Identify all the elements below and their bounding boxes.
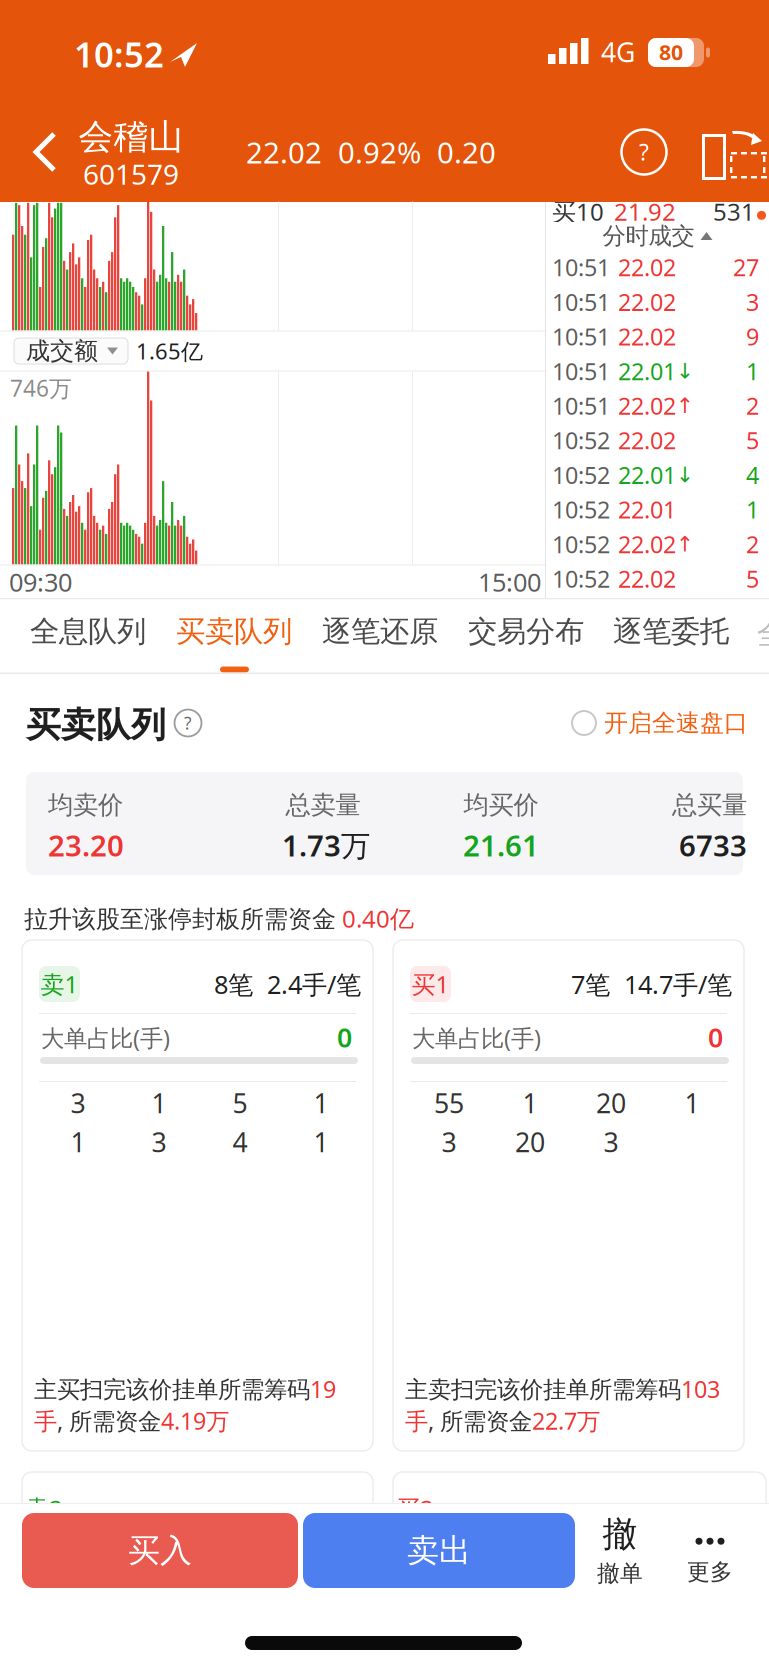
staticText: 3 <box>441 1124 456 1160</box>
staticText: 买1 <box>411 968 449 1000</box>
button[interactable]: 卖出 <box>303 1513 575 1588</box>
staticText: 5 <box>746 563 759 595</box>
staticText: 10:52 <box>552 424 610 456</box>
staticText: 10:52 <box>552 563 610 595</box>
staticText: ? <box>639 137 649 167</box>
staticText: 撤 <box>602 1512 637 1556</box>
staticText: ↓ <box>676 462 694 487</box>
staticText: 09:30 <box>9 565 72 599</box>
button[interactable]: 全息队列 <box>28 603 148 659</box>
staticText: 1 <box>151 1085 166 1121</box>
staticText: 1.65亿 <box>136 336 203 366</box>
staticText: 15:00 <box>478 565 541 599</box>
button[interactable]: 说明 <box>172 707 204 739</box>
staticText: 1 <box>522 1085 537 1121</box>
staticText: 大单占比(手) <box>412 1022 541 1054</box>
button[interactable]: 撤 <box>587 1511 653 1589</box>
staticText: 主卖扫完该价挂单所需筹码103手, 所需资金22.7万 <box>405 1373 720 1437</box>
staticText: 3 <box>603 1124 618 1160</box>
staticText: 22.01 <box>618 494 676 525</box>
staticText: 10:51 <box>552 355 610 387</box>
staticText: 拉升该股至涨停封板所需资金 0.40亿 <box>24 902 414 935</box>
staticText: 22.01 <box>618 459 676 491</box>
staticText: 7笔 14.7手/笔 <box>571 967 732 1001</box>
staticText: 20 <box>596 1085 626 1121</box>
staticText: 2 <box>746 390 759 422</box>
staticText: 6733 <box>679 825 747 865</box>
staticText: 1 <box>746 355 759 387</box>
staticText: 买10 <box>552 195 604 228</box>
staticText: 全息队列 <box>30 613 146 650</box>
staticText: ↑ <box>676 393 694 418</box>
staticText: 买卖队列 <box>176 613 292 650</box>
staticText: 27 <box>733 251 759 283</box>
staticText: 买入 <box>128 1530 192 1571</box>
staticText: 22.01 <box>618 355 676 387</box>
staticText: 10:51 <box>552 321 610 352</box>
staticText: 1 <box>746 494 759 525</box>
staticText: 分时成交 <box>602 221 694 251</box>
staticText: 22.02 <box>618 321 676 352</box>
button[interactable]: 逐笔还原 <box>320 603 440 659</box>
staticText: 22.02 <box>618 563 676 595</box>
button[interactable]: Help <box>618 122 670 182</box>
button[interactable]: 买入 <box>22 1513 298 1588</box>
staticText: 总买量 <box>672 789 747 821</box>
staticText: 10:52 <box>552 459 610 491</box>
button[interactable]: Back <box>0 100 72 202</box>
staticText: ↑ <box>676 532 694 556</box>
staticText: 4G <box>601 34 635 70</box>
staticText: 5 <box>232 1085 247 1121</box>
staticText: 3 <box>70 1085 85 1121</box>
staticText: 3 <box>151 1124 166 1160</box>
staticText: 交易分布 <box>468 613 584 650</box>
staticText: 10:51 <box>552 390 610 422</box>
staticText: 23.20 <box>48 825 124 865</box>
staticText: 22.02 <box>618 251 676 283</box>
staticText: 1 <box>313 1124 328 1160</box>
staticText: 8笔 2.4手/笔 <box>214 967 361 1001</box>
button[interactable]: Rotate to landscape <box>702 126 766 182</box>
staticText: 531 <box>713 195 755 228</box>
staticText: ↓ <box>676 359 694 383</box>
staticText: 746万 <box>10 372 72 403</box>
staticText: 买卖队列 <box>26 703 166 747</box>
staticText: 卖1 <box>40 968 78 1000</box>
staticText: 4 <box>232 1124 247 1160</box>
staticText: 主买扫完该价挂单所需筹码19手, 所需资金4.19万 <box>34 1373 336 1437</box>
staticText: 逐笔还原 <box>322 613 438 650</box>
staticText: 10:52 <box>552 528 610 560</box>
button[interactable]: 逐笔委托 <box>611 603 731 659</box>
button[interactable]: 成交额 <box>14 338 128 364</box>
button[interactable]: 买卖队列 <box>174 603 294 659</box>
staticText: 4 <box>746 459 759 491</box>
button[interactable]: 交易分布 <box>466 603 586 659</box>
staticText: 均买价 <box>463 789 538 821</box>
button[interactable]: 更多 <box>677 1511 743 1589</box>
staticText: 21.92 <box>614 195 676 228</box>
staticText: 3 <box>746 286 759 318</box>
staticText: 开启全速盘口 <box>604 708 748 738</box>
staticText: 总卖量 <box>285 789 360 821</box>
staticText: 22.02 0.92% 0.20 <box>246 132 496 172</box>
staticText: 80 <box>659 37 683 67</box>
staticText: 10:51 <box>552 286 610 318</box>
staticText: 会稽山 <box>78 115 183 159</box>
staticText: 20 <box>515 1124 545 1160</box>
staticText: 1.73万 <box>282 825 370 865</box>
staticText: 5 <box>746 424 759 456</box>
staticText: 10:52 <box>74 30 164 78</box>
button[interactable]: 开启全速盘口 <box>572 705 748 741</box>
staticText: 9 <box>746 321 759 352</box>
staticText: 55 <box>434 1085 464 1121</box>
staticText: 10:52 <box>552 494 610 525</box>
staticText: 22.02 <box>618 286 676 318</box>
staticText: 2 <box>746 528 759 560</box>
staticText: 均卖价 <box>48 789 123 821</box>
staticText: 1 <box>313 1085 328 1121</box>
staticText: 0 <box>708 1019 723 1055</box>
staticText: 21.61 <box>463 825 539 865</box>
staticText: 0 <box>337 1019 352 1055</box>
staticText: 10:51 <box>552 251 610 283</box>
staticText: 大单占比(手) <box>41 1022 170 1054</box>
